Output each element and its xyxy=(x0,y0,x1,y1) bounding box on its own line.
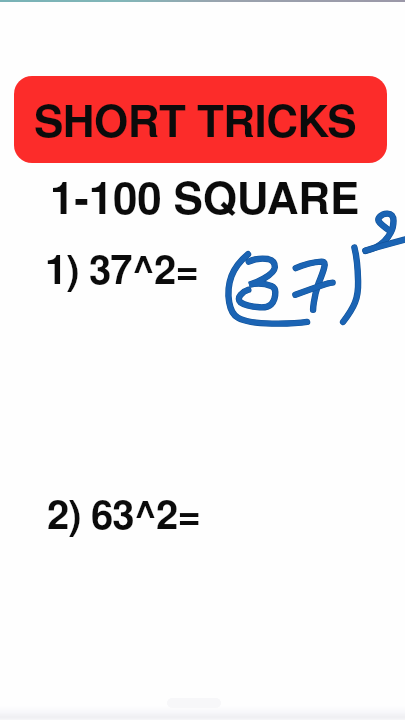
staticText: 1) 37^2= xyxy=(45,239,198,296)
staticText: 1-100 SQUARE xyxy=(50,164,360,227)
staticText: SHORT TRICKS xyxy=(34,87,357,150)
staticText: 2) 63^2= xyxy=(47,484,200,541)
button[interactable]: SHORT TRICKS xyxy=(14,76,387,163)
